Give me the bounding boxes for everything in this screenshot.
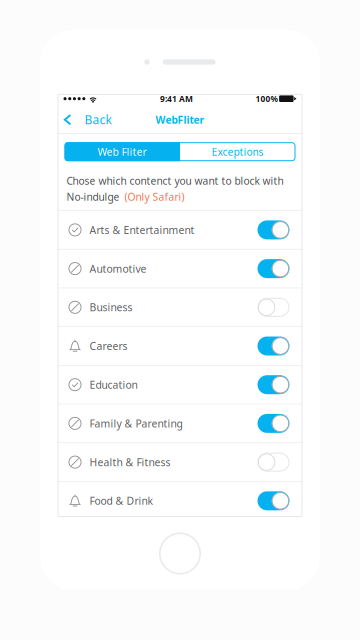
button[interactable]: Back: [57, 106, 112, 133]
staticText: Education: [89, 378, 137, 392]
staticText: WebFliter: [155, 113, 204, 127]
staticText: Health & Fitness: [89, 455, 170, 469]
button[interactable]: Web Fliter: [64, 142, 180, 161]
button[interactable]: Automotive: [57, 250, 302, 288]
staticText: Family & Parenting: [89, 416, 182, 430]
staticText: (Only Safari): [124, 190, 184, 204]
staticText: Exceptions: [212, 145, 264, 159]
staticText: Chose which contenct you want to block w…: [66, 174, 283, 188]
staticText: Business: [89, 300, 132, 314]
staticText: 9:41 AM: [160, 93, 193, 104]
staticText: Automotive: [89, 261, 146, 276]
button[interactable]: Education: [57, 366, 302, 404]
button[interactable]: Family & Parenting: [57, 404, 302, 442]
button[interactable]: Food & Drink: [57, 482, 302, 520]
button[interactable]: Business: [57, 288, 302, 326]
staticText: Back: [85, 111, 112, 128]
staticText: 100%: [255, 93, 277, 104]
staticText: Web Fliter: [98, 145, 147, 159]
staticText: Careers: [89, 339, 127, 353]
button[interactable]: Careers: [57, 327, 302, 365]
button[interactable]: Health & Fitness: [57, 443, 302, 481]
button[interactable]: Arts & Entertainment: [57, 211, 302, 249]
staticText: No-indulge: [66, 190, 119, 204]
button[interactable]: Exceptions: [180, 142, 295, 161]
staticText: Arts & Entertainment: [89, 223, 194, 237]
staticText: Food & Drink: [89, 494, 153, 508]
